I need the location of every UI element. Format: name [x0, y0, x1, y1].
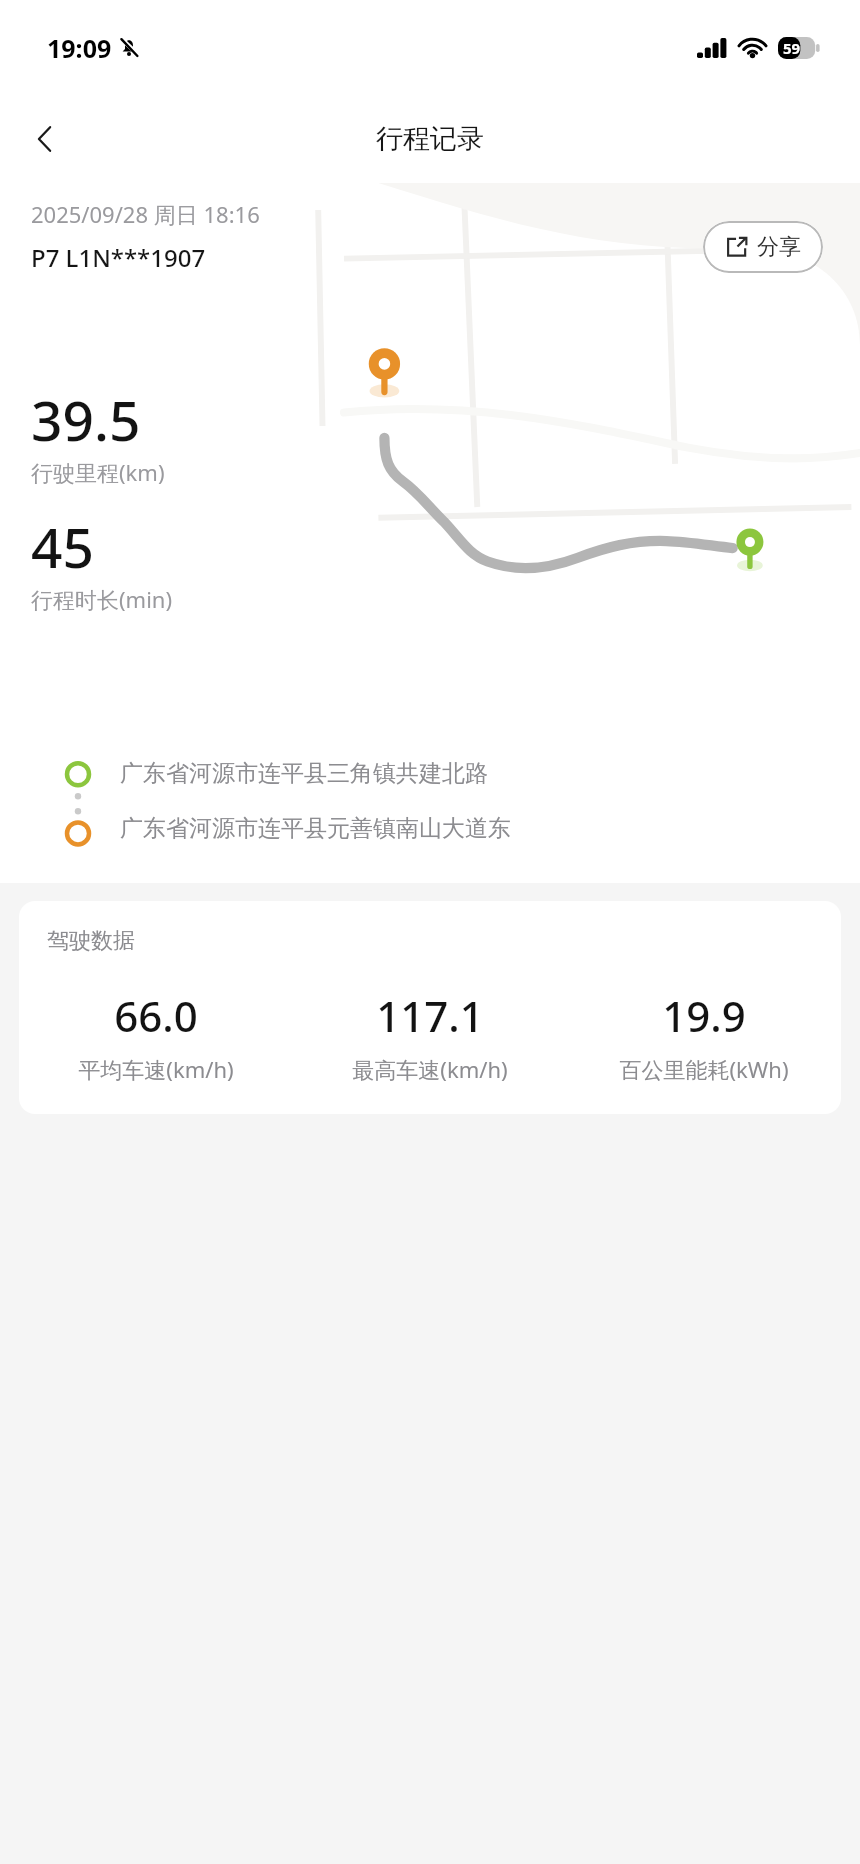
staticText: 平均车速(km/h): [78, 1054, 234, 1084]
staticText: 驾驶数据: [47, 927, 135, 955]
staticText: 行驶里程(km): [31, 457, 165, 487]
button[interactable]: 驾驶数据: [19, 901, 841, 1114]
staticText: 39.5: [31, 382, 141, 457]
staticText: 19.9: [662, 987, 746, 1044]
staticText: 59: [783, 38, 801, 58]
staticText: 分享: [757, 233, 801, 261]
staticText: 45: [31, 509, 94, 584]
staticText: 最高车速(km/h): [352, 1054, 508, 1084]
staticText: P7 L1N***1907: [31, 241, 206, 274]
staticText: 行程记录: [376, 122, 484, 156]
staticText: 66.0: [114, 987, 198, 1044]
staticText: 广东省河源市连平县元善镇南山大道东: [120, 814, 511, 843]
staticText: 广东省河源市连平县三角镇共建北路: [120, 759, 488, 788]
button[interactable]: 分享: [703, 221, 823, 273]
staticText: 2025/09/28 周日 18:16: [31, 199, 260, 229]
button[interactable]: Back: [14, 108, 76, 170]
staticText: 行程时长(min): [31, 584, 173, 614]
staticText: 百公里能耗(kWh): [619, 1054, 789, 1084]
staticText: 117.1: [376, 987, 484, 1044]
staticText: 19:09: [47, 31, 112, 65]
